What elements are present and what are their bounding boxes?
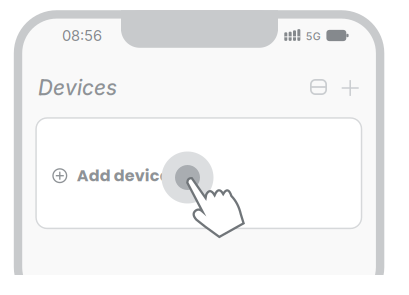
staticText: 08:56	[62, 27, 102, 44]
button[interactable]: Add	[339, 77, 362, 99]
staticText: Devices	[38, 75, 117, 100]
button[interactable]: Rooms	[307, 76, 330, 98]
staticText: Add device	[77, 164, 170, 187]
button[interactable]: Add device	[35, 117, 362, 229]
staticText: 5G	[306, 30, 321, 43]
